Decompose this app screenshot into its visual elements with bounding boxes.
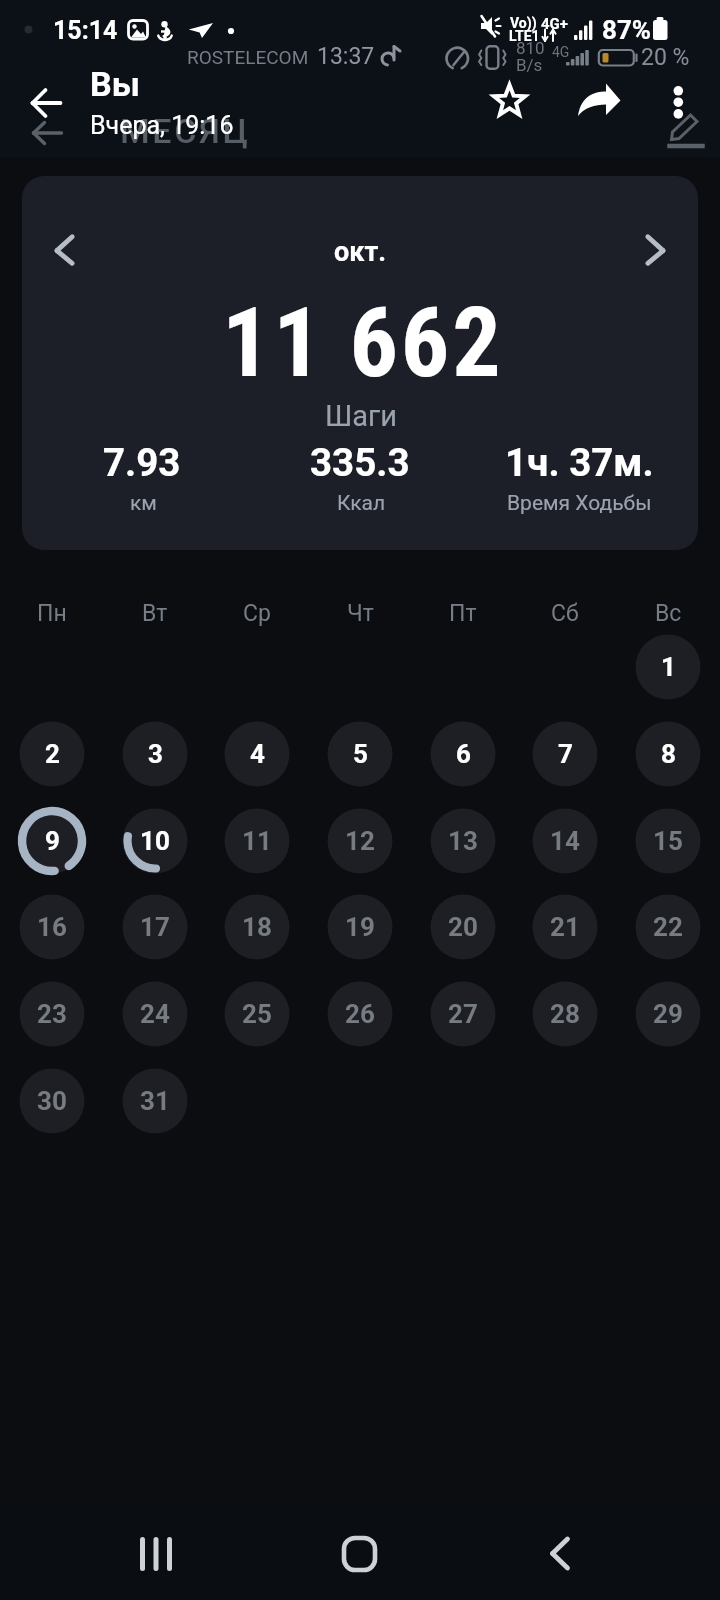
button[interactable]: 5	[320, 714, 400, 794]
staticText: Сб	[551, 600, 579, 627]
button[interactable]: 20	[423, 887, 503, 967]
staticText: 26	[345, 999, 375, 1029]
staticText: Vo))	[510, 15, 537, 31]
staticText: 4G+	[541, 15, 569, 33]
staticText: 20	[448, 912, 478, 942]
staticText: Вт	[142, 600, 168, 627]
button[interactable]: 31	[115, 1061, 195, 1141]
button[interactable]: 28	[525, 974, 605, 1054]
button[interactable]: 23	[12, 974, 92, 1054]
staticText: 15	[653, 826, 683, 856]
button[interactable]: 8	[628, 714, 708, 794]
button[interactable]: 22	[628, 887, 708, 967]
button[interactable]: Recent apps	[116, 1520, 196, 1588]
button[interactable]: 4	[217, 714, 297, 794]
button[interactable]: 30	[12, 1061, 92, 1141]
staticText: 18	[242, 912, 272, 942]
staticText: 22	[653, 912, 683, 942]
staticText: МЕСЯЦ	[120, 111, 251, 151]
staticText: LTE1	[509, 28, 540, 44]
staticText: 2	[45, 739, 60, 769]
staticText: 25	[242, 999, 272, 1029]
button[interactable]: 25	[217, 974, 297, 1054]
button[interactable]: 1	[628, 627, 708, 707]
button[interactable]: 18	[217, 887, 297, 967]
button[interactable]: 19	[320, 887, 400, 967]
staticText: 6	[456, 739, 471, 769]
button[interactable]: 7	[525, 714, 605, 794]
staticText: 20 %	[641, 44, 690, 71]
staticText: 14	[550, 826, 580, 856]
staticText: Пн	[37, 600, 67, 627]
staticText: Вы	[90, 64, 140, 104]
staticText: 13	[448, 826, 478, 856]
button[interactable]: 26	[320, 974, 400, 1054]
staticText: 5	[353, 739, 368, 769]
button[interactable]: 21	[525, 887, 605, 967]
other: Back	[32, 121, 63, 145]
button[interactable]: 16	[12, 887, 92, 967]
button[interactable]: Share	[575, 78, 623, 122]
staticText: ROSTELECOM	[187, 46, 309, 68]
staticText: 11 662	[222, 287, 504, 400]
button[interactable]: 17	[115, 887, 195, 967]
staticText: 21	[550, 912, 580, 942]
button[interactable]: 11	[217, 801, 297, 881]
staticText: 23	[37, 999, 67, 1029]
button[interactable]: 9	[12, 801, 92, 881]
button[interactable]: 24	[115, 974, 195, 1054]
staticText: 29	[653, 999, 683, 1029]
staticText: 27	[448, 999, 478, 1029]
button[interactable]: 13	[423, 801, 503, 881]
staticText: 16	[37, 912, 67, 942]
staticText: 15:14	[53, 16, 118, 45]
button[interactable]: Previous month	[35, 220, 95, 282]
staticText: Ср	[243, 600, 271, 627]
staticText: Время Ходьбы	[507, 491, 652, 516]
staticText: 17	[140, 912, 170, 942]
button[interactable]: 12	[320, 801, 400, 881]
staticText: Чт	[347, 600, 374, 627]
staticText: 7.93	[103, 440, 181, 485]
staticText: км	[130, 491, 157, 516]
button[interactable]: Back	[520, 1520, 600, 1588]
staticText: Шаги	[325, 399, 397, 433]
staticText: 12	[345, 826, 375, 856]
staticText: 810	[516, 38, 545, 58]
staticText: 9	[45, 826, 60, 856]
button[interactable]: 10	[115, 801, 195, 881]
button[interactable]: 6	[423, 714, 503, 794]
button[interactable]: Next month	[625, 220, 685, 282]
staticText: 4G	[552, 44, 570, 60]
button[interactable]: 29	[628, 974, 708, 1054]
button[interactable]: Favorite	[479, 71, 539, 131]
staticText: 8	[661, 739, 676, 769]
button[interactable]: 2	[12, 714, 92, 794]
staticText: 30	[37, 1086, 67, 1116]
button[interactable]: 15	[628, 801, 708, 881]
staticText: 4	[250, 739, 265, 769]
staticText: Пт	[449, 600, 477, 627]
staticText: 13:37	[317, 43, 375, 70]
staticText: 1	[661, 652, 676, 682]
staticText: 24	[140, 999, 170, 1029]
staticText: 10	[140, 826, 170, 856]
staticText: B/s	[516, 55, 543, 75]
staticText: 7	[558, 739, 573, 769]
staticText: Вс	[655, 600, 682, 627]
button[interactable]: 3	[115, 714, 195, 794]
staticText: 1ч. 37м.	[505, 440, 654, 485]
staticText: Вчера, 19:16	[90, 111, 234, 140]
staticText: 87%	[602, 15, 652, 45]
button[interactable]: 27	[423, 974, 503, 1054]
staticText: окт.	[334, 236, 387, 268]
staticText: 28	[550, 999, 580, 1029]
staticText: 335.3	[310, 440, 410, 485]
staticText: 3	[148, 739, 163, 769]
button[interactable]: Home	[319, 1520, 399, 1588]
button[interactable]: 14	[525, 801, 605, 881]
button[interactable]: Back	[17, 78, 75, 128]
staticText: 31	[140, 1086, 170, 1116]
staticText: 11	[242, 826, 272, 856]
button[interactable]: More options	[652, 72, 706, 132]
